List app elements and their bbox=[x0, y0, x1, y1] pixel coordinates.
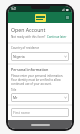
staticText: Please enter your personal information. … bbox=[11, 74, 69, 86]
button[interactable]: First name bbox=[11, 108, 69, 117]
staticText: 9:41 bbox=[11, 7, 17, 11]
button[interactable]: Mr bbox=[11, 93, 69, 102]
button[interactable]: Home bbox=[35, 14, 46, 22]
staticText: Nigeria bbox=[13, 54, 64, 59]
button[interactable]: Continue later bbox=[47, 35, 67, 39]
staticText: Continue later bbox=[47, 35, 67, 39]
staticText: Country of residence bbox=[11, 46, 40, 50]
staticText: Open Account bbox=[11, 26, 46, 33]
staticText: Not ready with this form? bbox=[11, 35, 47, 39]
staticText: Personal information bbox=[11, 67, 49, 72]
button[interactable]: Nigeria bbox=[11, 52, 69, 61]
staticText: Mr bbox=[13, 95, 64, 100]
staticText: First name bbox=[13, 110, 67, 115]
button[interactable]: Menu bbox=[65, 15, 70, 20]
staticText: Title bbox=[11, 88, 17, 92]
